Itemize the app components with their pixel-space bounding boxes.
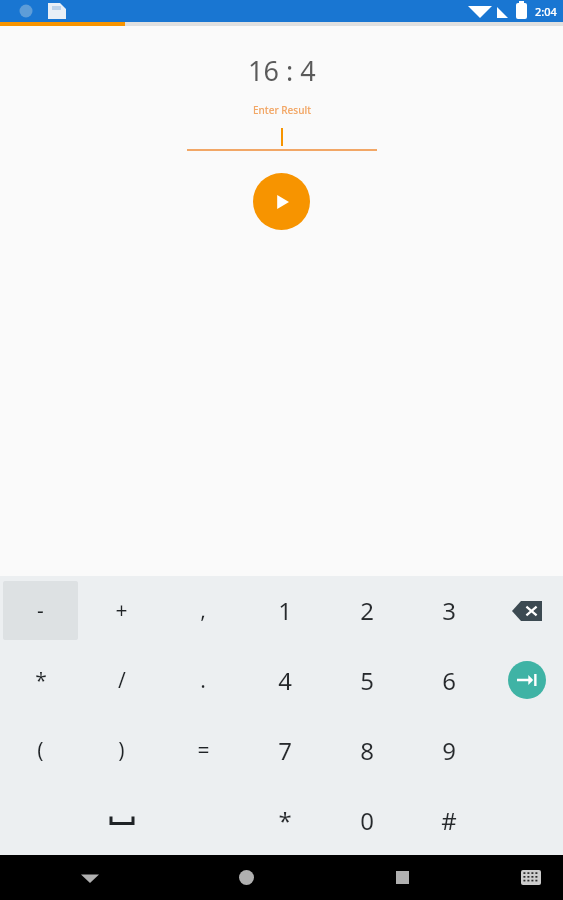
button[interactable]: Enter bbox=[508, 661, 546, 699]
staticText: 4 bbox=[278, 664, 292, 697]
button[interactable]: - bbox=[3, 581, 78, 640]
button[interactable]: 3 bbox=[408, 576, 490, 645]
button[interactable]: . bbox=[165, 650, 241, 710]
button[interactable] bbox=[187, 123, 377, 151]
staticText: 2 bbox=[360, 594, 374, 627]
button[interactable]: 2 bbox=[326, 576, 408, 645]
staticText: 7 bbox=[278, 734, 292, 767]
staticText: 5 bbox=[360, 664, 374, 697]
staticText: + bbox=[115, 596, 128, 625]
staticText: 0 bbox=[360, 804, 374, 837]
staticText: - bbox=[37, 596, 44, 625]
button[interactable]: 4 bbox=[244, 645, 326, 715]
button[interactable]: + bbox=[84, 581, 159, 640]
button[interactable]: / bbox=[84, 650, 159, 710]
button[interactable]: , bbox=[165, 581, 241, 640]
staticText: # bbox=[441, 804, 457, 837]
staticText: 8 bbox=[360, 734, 374, 767]
staticText: / bbox=[118, 666, 126, 695]
staticText: 3 bbox=[442, 594, 456, 627]
button[interactable]: Home bbox=[222, 855, 270, 900]
staticText: 1 bbox=[278, 594, 292, 627]
button[interactable]: Switch keyboard bbox=[507, 855, 555, 900]
button[interactable]: Backspace bbox=[505, 589, 549, 633]
staticText: = bbox=[197, 736, 210, 765]
button[interactable] bbox=[84, 790, 159, 850]
button[interactable]: 7 bbox=[244, 715, 326, 785]
button[interactable]: # bbox=[408, 785, 490, 855]
staticText: * bbox=[35, 666, 47, 695]
staticText: Enter Result bbox=[253, 103, 311, 117]
button[interactable]: ( bbox=[3, 720, 78, 780]
button[interactable]: Recents bbox=[378, 855, 426, 900]
button[interactable]: ) bbox=[84, 720, 159, 780]
staticText: 9 bbox=[442, 734, 456, 767]
staticText: * bbox=[278, 804, 292, 837]
button[interactable]: 8 bbox=[326, 715, 408, 785]
button[interactable]: 0 bbox=[326, 785, 408, 855]
staticText: , bbox=[200, 596, 206, 625]
staticText: . bbox=[200, 666, 206, 695]
button[interactable]: * bbox=[3, 650, 78, 710]
button[interactable]: 1 bbox=[244, 576, 326, 645]
button[interactable]: Play bbox=[253, 173, 310, 230]
button[interactable]: = bbox=[165, 720, 241, 780]
button[interactable]: 5 bbox=[326, 645, 408, 715]
button[interactable]: 6 bbox=[408, 645, 490, 715]
button[interactable]: * bbox=[244, 785, 326, 855]
staticText: 2:04 bbox=[535, 4, 557, 19]
button[interactable]: Back bbox=[66, 855, 114, 900]
button[interactable]: 9 bbox=[408, 715, 490, 785]
staticText: 6 bbox=[442, 664, 456, 697]
staticText: ( bbox=[37, 736, 44, 765]
staticText: ) bbox=[118, 736, 125, 765]
staticText: 16 : 4 bbox=[248, 52, 316, 89]
